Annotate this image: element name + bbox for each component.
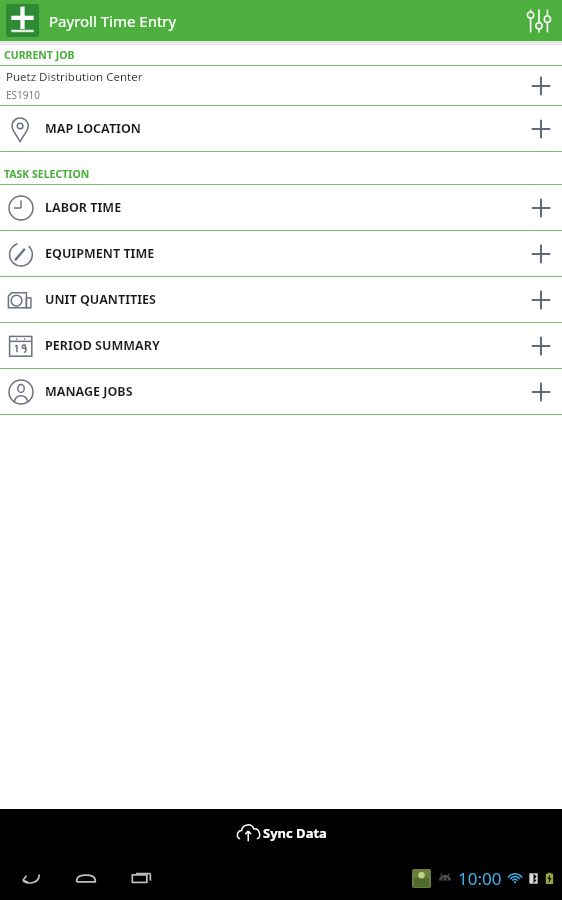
button[interactable]: Add (520, 279, 562, 321)
button[interactable]: Add (520, 187, 562, 229)
button[interactable]: Add (520, 108, 562, 150)
button[interactable]: Sync Data (0, 809, 562, 856)
button[interactable]: Back (10, 858, 50, 898)
button[interactable]: EQUIPMENT TIME (0, 231, 562, 276)
button[interactable]: Settings (516, 0, 562, 41)
button[interactable]: Puetz Distribution Center (0, 66, 562, 105)
staticText: Payroll Time Entry (49, 11, 177, 31)
button[interactable]: MANAGE JOBS (0, 369, 562, 414)
staticText: MAP LOCATION (45, 120, 142, 137)
button[interactable]: PERIOD SUMMARY (0, 323, 562, 368)
staticText: CURRENT JOB (4, 48, 75, 62)
staticText: TASK SELECTION (4, 167, 90, 181)
staticText: PERIOD SUMMARY (45, 337, 160, 354)
staticText: LABOR TIME (45, 199, 122, 216)
button[interactable]: Add (520, 233, 562, 275)
staticText: EQUIPMENT TIME (45, 245, 155, 262)
button[interactable]: Add (520, 325, 562, 367)
staticText: MANAGE JOBS (45, 383, 133, 400)
staticText: Puetz Distribution Center (6, 69, 143, 85)
button[interactable]: App logo (6, 4, 39, 37)
button[interactable]: Add (520, 371, 562, 413)
button[interactable]: MAP LOCATION (0, 106, 562, 151)
button[interactable]: LABOR TIME (0, 185, 562, 230)
staticText: 10:00 (458, 867, 502, 890)
button[interactable]: Add (520, 66, 562, 105)
button[interactable]: Home (66, 858, 106, 898)
staticText: UNIT QUANTITIES (45, 291, 157, 308)
staticText: Sync Data (263, 824, 327, 842)
staticText: ES1910 (6, 88, 40, 102)
button[interactable]: Recent apps (122, 858, 162, 898)
button[interactable]: UNIT QUANTITIES (0, 277, 562, 322)
